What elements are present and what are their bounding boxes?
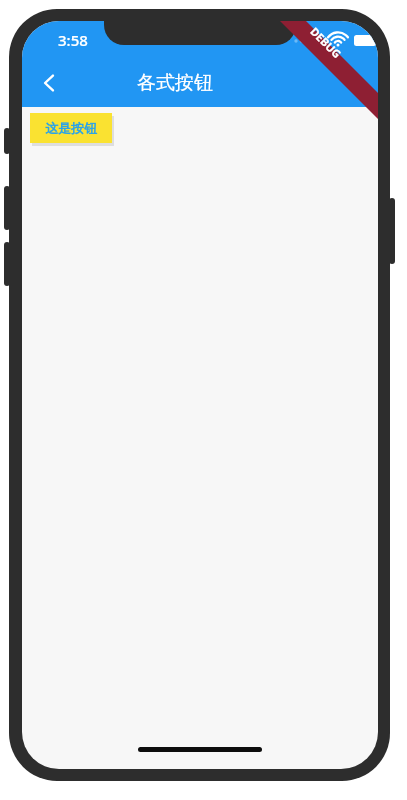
staticText: 这是按钮 <box>45 120 97 136</box>
button[interactable]: 这是按钮 <box>30 113 112 143</box>
staticText: 3:58 <box>58 30 88 50</box>
button[interactable]: Back <box>26 60 72 106</box>
staticText: 各式按钮 <box>47 71 303 95</box>
staticText: DEBUG <box>307 24 345 61</box>
